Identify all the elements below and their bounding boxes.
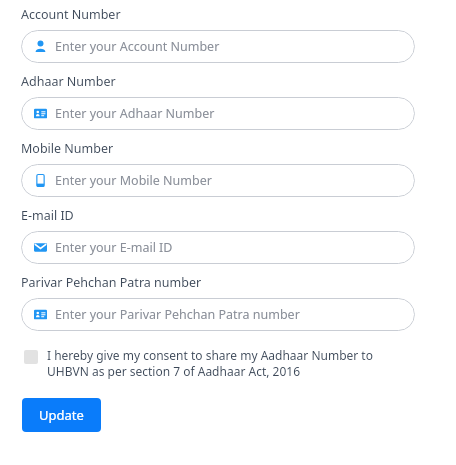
button[interactable]: Enter your E-mail ID [21,231,415,264]
staticText: Enter your Parivar Pehchan Patra number [55,306,300,323]
button[interactable]: Enter your Account Number [21,30,415,63]
button[interactable]: I hereby give my consent to share my Aad… [21,347,415,380]
button[interactable]: Update [22,398,101,432]
staticText: Update [39,406,84,424]
staticText: Parivar Pehchan Patra number [21,274,202,291]
staticText: Enter your Account Number [55,38,220,55]
staticText: E-mail ID [21,207,74,224]
staticText: Mobile Number [21,140,114,157]
staticText: Account Number [21,6,121,23]
staticText: Adhaar Number [21,73,116,90]
staticText: I hereby give my consent to share my Aad… [47,347,415,380]
button[interactable]: Enter your Adhaar Number [21,97,415,130]
staticText: Enter your Mobile Number [55,172,212,189]
button[interactable]: Enter your Parivar Pehchan Patra number [21,298,415,331]
button[interactable]: Enter your Mobile Number [21,164,415,197]
staticText: Enter your Adhaar Number [55,105,215,122]
staticText: Enter your E-mail ID [55,239,173,256]
